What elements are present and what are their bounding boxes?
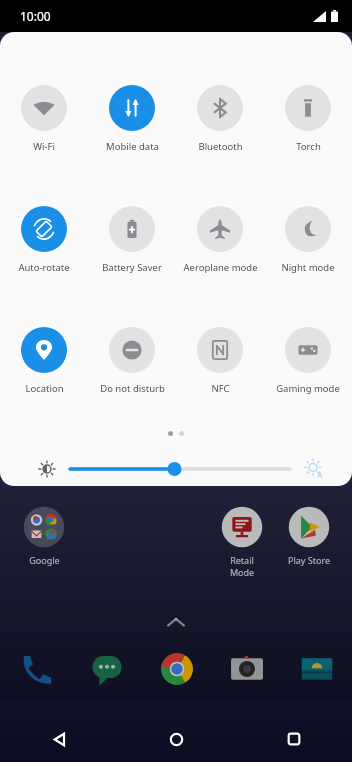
button[interactable]: Bluetooth: [176, 85, 264, 153]
button[interactable]: Mobile data: [88, 85, 176, 153]
staticText: Play Store: [288, 554, 330, 566]
staticText: Google: [29, 554, 60, 566]
button[interactable]: NFC: [176, 327, 264, 395]
staticText: Night mode: [281, 261, 335, 274]
button[interactable]: Recents: [235, 716, 352, 762]
staticText: Bluetooth: [198, 140, 243, 153]
staticText: Do not disturb: [100, 382, 165, 395]
button[interactable]: Auto-rotate: [0, 206, 88, 274]
button[interactable]: Retail Mode: [219, 505, 265, 578]
button[interactable]: Play Store: [286, 505, 332, 566]
staticText: Location: [25, 382, 64, 395]
button[interactable]: Back: [0, 716, 118, 762]
button[interactable]: Auto brightness: [304, 459, 324, 479]
button[interactable]: Gallery: [282, 645, 352, 693]
button[interactable]: Battery Saver: [88, 206, 176, 274]
staticText: Gaming mode: [276, 382, 340, 395]
other: Brightness: [38, 460, 56, 478]
button[interactable]: Gaming mode: [264, 327, 352, 395]
staticText: Retail Mode: [219, 554, 265, 578]
staticText: Mobile data: [106, 140, 159, 153]
button[interactable]: Night mode: [264, 206, 352, 274]
button[interactable]: Messages: [71, 645, 142, 693]
staticText: NFC: [211, 382, 230, 395]
staticText: Wi-Fi: [33, 140, 55, 153]
staticText: 10:00: [20, 8, 51, 24]
button[interactable]: Phone: [0, 645, 71, 693]
staticText: Battery Saver: [102, 261, 162, 274]
button[interactable]: Camera: [212, 645, 282, 693]
button[interactable]: [70, 458, 290, 480]
staticText: Auto-rotate: [18, 261, 70, 274]
staticText: Torch: [296, 140, 321, 153]
button[interactable]: Aeroplane mode: [176, 206, 264, 274]
button[interactable]: Do not disturb: [88, 327, 176, 395]
staticText: Aeroplane mode: [183, 261, 258, 274]
button[interactable]: Google: [21, 505, 67, 566]
button[interactable]: Chrome: [142, 645, 212, 693]
button[interactable]: Wi-Fi: [0, 85, 88, 153]
button[interactable]: Torch: [264, 85, 352, 153]
button[interactable]: Location: [0, 327, 88, 395]
button[interactable]: Home: [118, 716, 235, 762]
